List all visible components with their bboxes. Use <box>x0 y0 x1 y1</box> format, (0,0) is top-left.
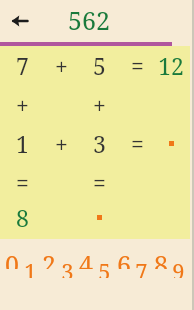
staticText: + <box>16 89 29 120</box>
button[interactable]: + <box>82 87 116 121</box>
button[interactable]: 5 <box>82 48 116 82</box>
button[interactable]: + <box>44 48 78 82</box>
staticText: 1 <box>16 128 29 159</box>
button[interactable]: 7 <box>132 256 151 278</box>
button[interactable]: = <box>5 165 39 199</box>
button[interactable]: 7 <box>5 48 39 82</box>
staticText: + <box>55 128 68 159</box>
staticText: 6 <box>117 247 131 269</box>
staticText: 8 <box>16 202 29 233</box>
staticText: 5 <box>98 256 111 278</box>
button[interactable]: 3 <box>82 126 116 160</box>
staticText: 8 <box>154 247 168 269</box>
button[interactable]: 4 <box>76 247 95 269</box>
button[interactable]: = <box>120 48 154 82</box>
staticText: 5 <box>93 50 106 81</box>
staticText: 3 <box>93 128 106 159</box>
button[interactable]: 6 <box>114 247 133 269</box>
button[interactable]: 9 <box>169 256 188 278</box>
button[interactable]: 8 <box>5 200 39 234</box>
button[interactable]: 5 <box>95 256 114 278</box>
button[interactable]: 12 <box>154 48 188 82</box>
staticText: = <box>131 50 144 81</box>
staticText: 9 <box>172 256 185 278</box>
staticText: 0 <box>5 247 19 269</box>
staticText: + <box>55 50 68 81</box>
staticText: 4 <box>79 247 93 269</box>
button[interactable]: 2 <box>39 247 58 269</box>
button[interactable]: Back <box>4 5 36 37</box>
staticText: = <box>16 167 29 198</box>
button[interactable]: + <box>44 126 78 160</box>
button[interactable] <box>154 126 188 160</box>
staticText: 12 <box>158 50 184 81</box>
staticText: 7 <box>135 256 148 278</box>
staticText: 7 <box>16 50 29 81</box>
staticText: + <box>93 89 106 120</box>
button[interactable]: = <box>82 165 116 199</box>
button[interactable]: 8 <box>151 247 170 269</box>
staticText: 562 <box>68 3 110 37</box>
staticText: 2 <box>42 247 56 269</box>
button[interactable] <box>82 200 116 234</box>
button[interactable]: 1 <box>21 256 40 278</box>
button[interactable]: 1 <box>5 126 39 160</box>
button[interactable]: 3 <box>58 256 77 278</box>
staticText: = <box>93 167 106 198</box>
button[interactable]: 0 <box>2 247 21 269</box>
staticText: 1 <box>24 256 37 278</box>
button[interactable]: = <box>120 126 154 160</box>
staticText: 3 <box>61 256 74 278</box>
button[interactable]: + <box>5 87 39 121</box>
staticText: = <box>131 128 144 159</box>
